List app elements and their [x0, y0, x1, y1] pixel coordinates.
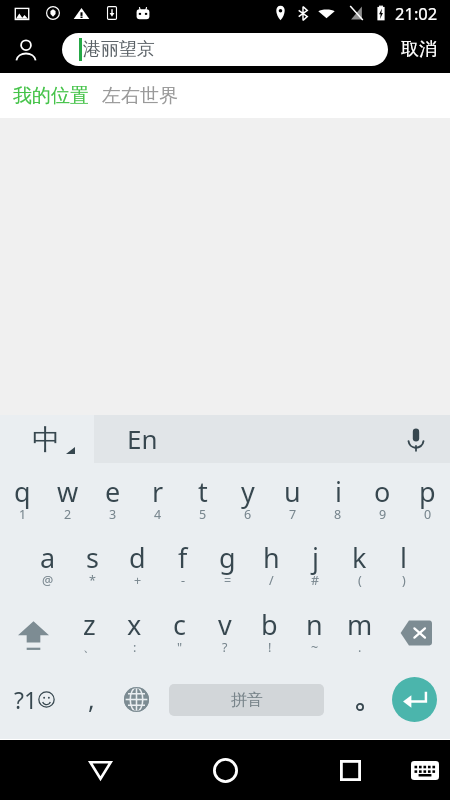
staticText: 中	[32, 422, 60, 457]
staticText: x	[127, 606, 142, 643]
staticText: d	[129, 539, 146, 576]
staticText: 21:02	[395, 2, 438, 24]
button[interactable]: h	[249, 529, 293, 596]
staticText: 2	[64, 506, 72, 523]
staticText: 7	[289, 506, 297, 523]
staticText: 5	[199, 506, 207, 523]
staticText: z	[83, 606, 96, 643]
staticText: q	[14, 473, 31, 510]
button[interactable]: p	[405, 463, 450, 529]
staticText: t	[198, 473, 208, 510]
button[interactable]: 左右世界	[102, 84, 178, 108]
staticText: w	[57, 473, 79, 510]
button[interactable]: z	[67, 596, 112, 663]
button[interactable]: Enter	[392, 677, 437, 722]
staticText: =	[224, 572, 232, 589]
staticText: )	[402, 572, 406, 589]
staticText: ~	[311, 639, 319, 656]
staticText: "	[177, 639, 183, 656]
button[interactable]: d	[115, 529, 160, 596]
staticText: o	[374, 473, 391, 510]
button[interactable]: n	[292, 596, 337, 663]
staticText: 拼音	[231, 690, 263, 710]
staticText: 0	[424, 506, 432, 523]
button[interactable]: Back	[70, 740, 130, 800]
staticText: /	[269, 572, 274, 589]
button[interactable]: m	[337, 596, 382, 663]
button[interactable]: r	[135, 463, 180, 529]
staticText: m	[347, 606, 373, 643]
button[interactable]: a	[25, 529, 70, 596]
button[interactable]: e	[90, 463, 135, 529]
staticText: !	[268, 639, 272, 656]
staticText: v	[218, 606, 232, 643]
staticText: e	[105, 473, 121, 510]
staticText: h	[263, 539, 280, 576]
staticText: En	[127, 421, 158, 456]
button[interactable]: t	[180, 463, 225, 529]
button[interactable]: Home	[195, 740, 255, 800]
staticText: u	[284, 473, 301, 510]
button[interactable]: b	[247, 596, 292, 663]
staticText: i	[335, 473, 342, 510]
staticText: *	[89, 572, 96, 589]
button[interactable]: ?1	[0, 663, 68, 733]
staticText: r	[152, 473, 164, 510]
button[interactable]: g	[205, 529, 249, 596]
button[interactable]: Recents	[320, 740, 380, 800]
button[interactable]: s	[70, 529, 115, 596]
staticText: 1	[19, 506, 27, 523]
button[interactable]: l	[381, 529, 425, 596]
staticText: 、	[83, 639, 96, 655]
button[interactable]: Shift	[0, 596, 67, 663]
staticText: 8	[334, 506, 342, 523]
button[interactable]: 我的位置	[13, 84, 89, 108]
button[interactable]: i	[315, 463, 360, 529]
button[interactable]: q	[0, 463, 45, 529]
button[interactable]: Keyboard	[398, 740, 450, 800]
staticText: @	[42, 572, 54, 589]
staticText: p	[419, 473, 436, 510]
button[interactable]	[332, 663, 388, 733]
button[interactable]: Account	[12, 36, 40, 64]
button[interactable]: Voice input	[388, 415, 444, 463]
button[interactable]: v	[202, 596, 247, 663]
staticText: 港丽望京	[83, 38, 155, 61]
staticText: n	[306, 606, 323, 643]
button[interactable]: u	[270, 463, 315, 529]
staticText: 我的位置	[13, 84, 89, 108]
button[interactable]: k	[337, 529, 381, 596]
button[interactable]: Backspace	[382, 596, 450, 663]
staticText: .	[358, 639, 362, 656]
staticText: 取消	[401, 38, 437, 61]
staticText: ?1	[14, 684, 38, 715]
staticText: b	[261, 606, 278, 643]
staticText: 9	[379, 506, 387, 523]
staticText: s	[86, 539, 99, 576]
button[interactable]: y	[225, 463, 270, 529]
staticText: 4	[154, 506, 162, 523]
button[interactable]: c	[157, 596, 202, 663]
staticText: ?	[222, 639, 228, 656]
button[interactable]: ,	[68, 663, 114, 733]
button[interactable]: j	[293, 529, 337, 596]
staticText: (	[358, 572, 362, 589]
button[interactable]: 取消	[394, 26, 444, 73]
staticText: a	[40, 539, 56, 576]
staticText: #	[311, 572, 320, 589]
button[interactable]: f	[160, 529, 205, 596]
button[interactable]: 拼音	[169, 684, 324, 716]
button[interactable]: o	[360, 463, 405, 529]
button[interactable]: 港丽望京	[62, 33, 388, 66]
button[interactable]: 中	[0, 415, 94, 463]
button[interactable]: x	[112, 596, 157, 663]
staticText: :	[133, 639, 137, 656]
button[interactable]: w	[45, 463, 90, 529]
staticText: ,	[88, 682, 95, 716]
staticText: l	[400, 539, 407, 576]
staticText: 左右世界	[102, 84, 178, 108]
button[interactable]: Change language	[114, 663, 158, 733]
button[interactable]: En	[94, 415, 450, 463]
staticText: j	[312, 539, 319, 576]
staticText: f	[178, 539, 188, 576]
